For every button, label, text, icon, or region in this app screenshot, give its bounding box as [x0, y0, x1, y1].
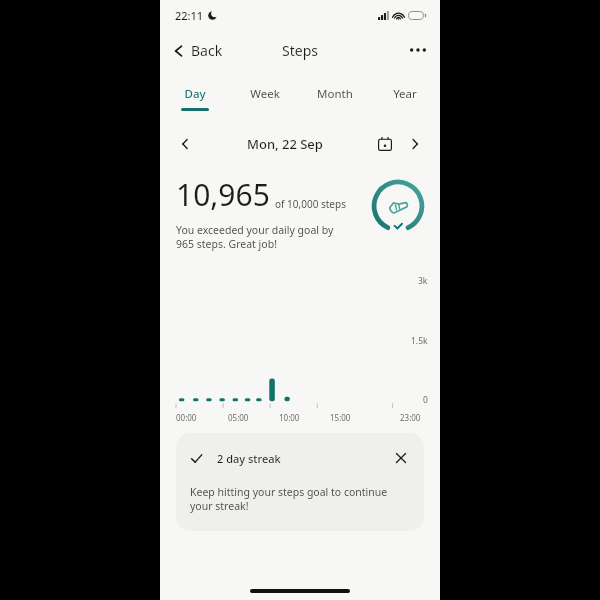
button[interactable]: Day: [160, 86, 230, 116]
button[interactable]: Dismiss streak card: [390, 447, 412, 469]
button[interactable]: Previous day: [172, 131, 198, 157]
staticText: Steps: [282, 41, 318, 60]
staticText: of 10,000 steps: [275, 197, 346, 211]
button[interactable]: Back: [166, 37, 229, 64]
staticText: Back: [191, 41, 223, 60]
button[interactable]: Year: [370, 86, 440, 116]
staticText: 10:00: [279, 412, 300, 423]
staticText: Mon, 22 Sep: [247, 135, 323, 153]
staticText: 10,965: [176, 174, 270, 215]
staticText: Year: [393, 86, 417, 102]
staticText: Keep hitting your steps goal to continue…: [190, 485, 388, 513]
staticText: 1.5k: [411, 335, 428, 347]
staticText: Week: [250, 86, 280, 102]
button[interactable]: Next day: [402, 131, 428, 157]
staticText: You exceeded your daily goal by 965 step…: [176, 223, 334, 251]
staticText: 00:00: [176, 412, 197, 423]
staticText: 2 day streak: [217, 451, 281, 466]
button[interactable]: Month: [300, 86, 370, 116]
staticText: Month: [317, 86, 353, 102]
button[interactable]: 2 day streak: [176, 433, 424, 531]
staticText: 3k: [418, 275, 428, 287]
staticText: Day: [184, 86, 206, 102]
button[interactable]: Week: [230, 86, 300, 116]
staticText: 15:00: [330, 412, 351, 423]
button[interactable]: Open calendar: [372, 131, 398, 157]
staticText: 0: [423, 394, 428, 406]
staticText: 23:00: [400, 412, 421, 423]
staticText: 22:11: [175, 8, 204, 23]
button[interactable]: More options: [404, 36, 432, 64]
staticText: 05:00: [228, 412, 249, 423]
